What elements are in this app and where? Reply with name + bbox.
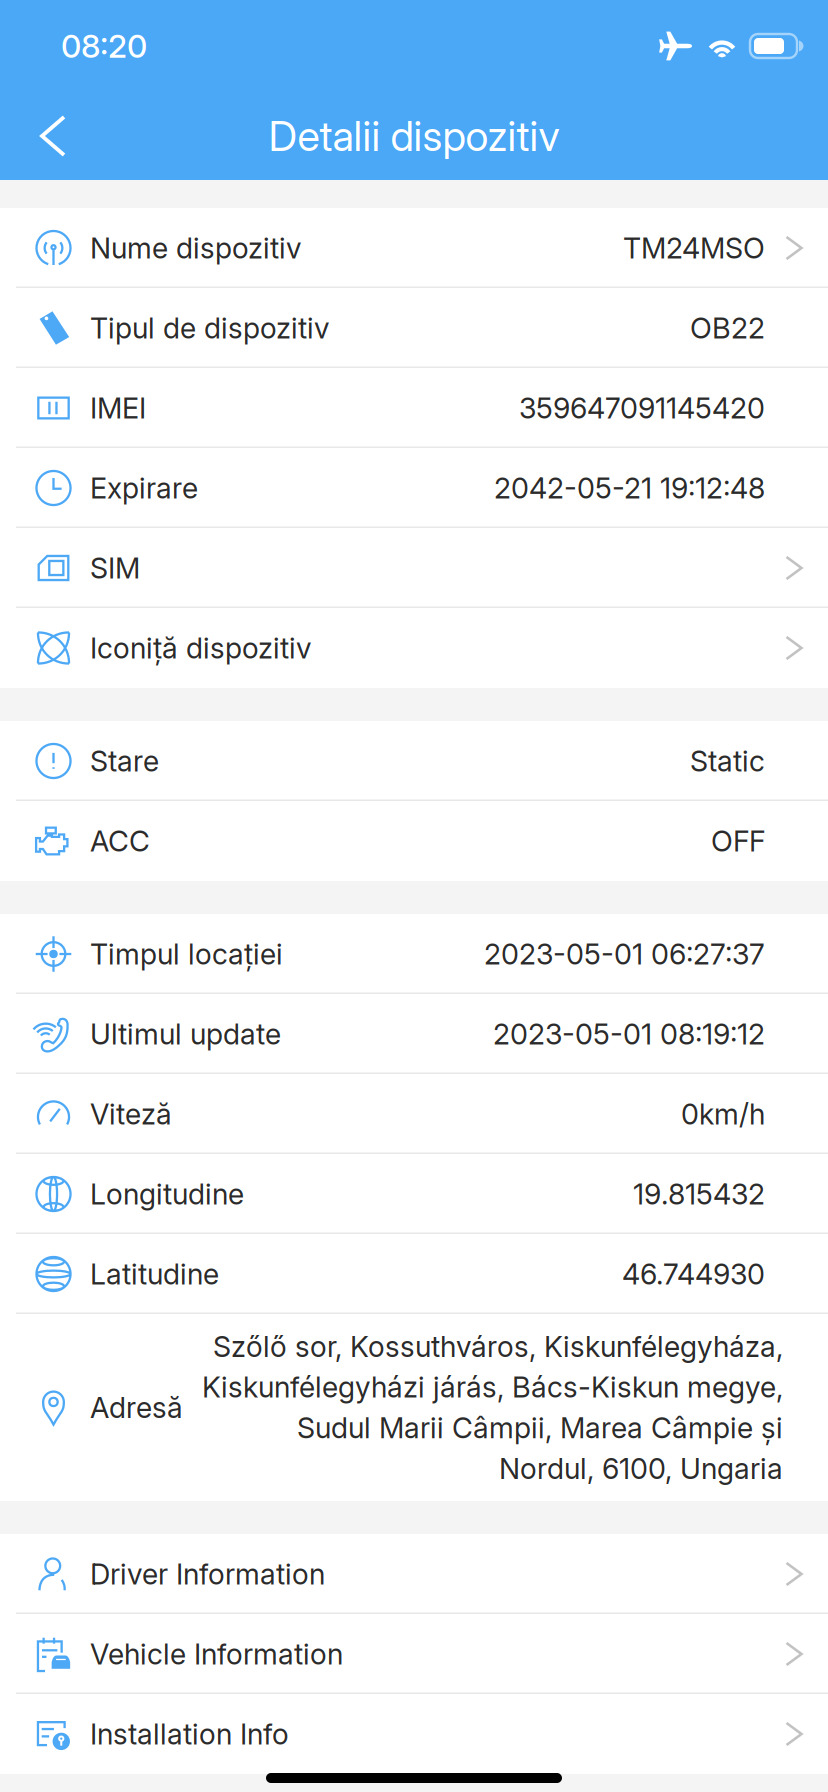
button[interactable]: Tipul de dispozitiv — [0, 288, 828, 368]
staticText: Installation Info — [90, 1717, 289, 1751]
staticText: 19.815432 — [633, 1177, 765, 1211]
staticText: Iconiță dispozitiv — [90, 631, 312, 665]
button[interactable]: Latitudine — [0, 1234, 828, 1314]
button[interactable]: Longitudine — [0, 1154, 828, 1234]
button[interactable]: Iconiță dispozitiv — [0, 608, 828, 688]
staticText: Detalii dispozitiv — [268, 111, 559, 161]
button[interactable]: Timpul locației — [0, 914, 828, 994]
staticText: 2042-05-21 19:12:48 — [494, 471, 765, 505]
staticText: Stare — [90, 744, 159, 778]
staticText: 08:20 — [61, 27, 147, 65]
button[interactable]: Stare — [0, 721, 828, 801]
button[interactable]: ACC — [0, 801, 828, 881]
staticText: Expirare — [90, 471, 198, 505]
staticText: Szőlő sor, Kossuthváros, Kiskunfélegyház… — [213, 1329, 783, 1364]
staticText: Nume dispozitiv — [90, 231, 302, 265]
staticText: OB22 — [690, 311, 765, 345]
button[interactable]: Back — [25, 106, 81, 166]
staticText: Driver Information — [90, 1557, 325, 1591]
staticText: TM24MSO — [623, 231, 765, 265]
button[interactable]: Ultimul update — [0, 994, 828, 1074]
staticText: 2023-05-01 06:27:37 — [484, 937, 765, 971]
staticText: ACC — [90, 824, 150, 858]
button[interactable]: Installation Info — [0, 1694, 828, 1774]
staticText: Longitudine — [90, 1177, 244, 1211]
staticText: OFF — [711, 824, 765, 858]
staticText: Nordul, 6100, Ungaria — [499, 1451, 783, 1486]
staticText: Kiskunfélegyházi járás, Bács-Kiskun megy… — [202, 1370, 783, 1404]
staticText: Vehicle Information — [90, 1637, 343, 1671]
staticText: Sudul Marii Câmpii, Marea Câmpie și — [297, 1410, 783, 1445]
button[interactable]: Expirare — [0, 448, 828, 528]
staticText: 2023-05-01 08:19:12 — [493, 1017, 765, 1051]
button[interactable]: Adresă — [0, 1314, 828, 1501]
staticText: SIM — [90, 551, 140, 585]
staticText: Adresă — [90, 1390, 183, 1425]
button[interactable]: Vehicle Information — [0, 1614, 828, 1694]
staticText: 46.744930 — [622, 1257, 765, 1291]
staticText: Ultimul update — [90, 1017, 281, 1051]
button[interactable]: IMEI — [0, 368, 828, 448]
staticText: Tipul de dispozitiv — [90, 311, 330, 345]
staticText: 0km/h — [681, 1097, 765, 1131]
staticText: Static — [690, 744, 765, 778]
staticText: IMEI — [90, 391, 146, 425]
button[interactable]: Viteză — [0, 1074, 828, 1154]
button[interactable]: Nume dispozitiv — [0, 208, 828, 288]
staticText: 359647091145420 — [519, 391, 765, 425]
button[interactable]: Driver Information — [0, 1534, 828, 1614]
staticText: Viteză — [90, 1097, 172, 1131]
button[interactable]: SIM — [0, 528, 828, 608]
staticText: Timpul locației — [90, 937, 283, 971]
staticText: Latitudine — [90, 1257, 219, 1291]
